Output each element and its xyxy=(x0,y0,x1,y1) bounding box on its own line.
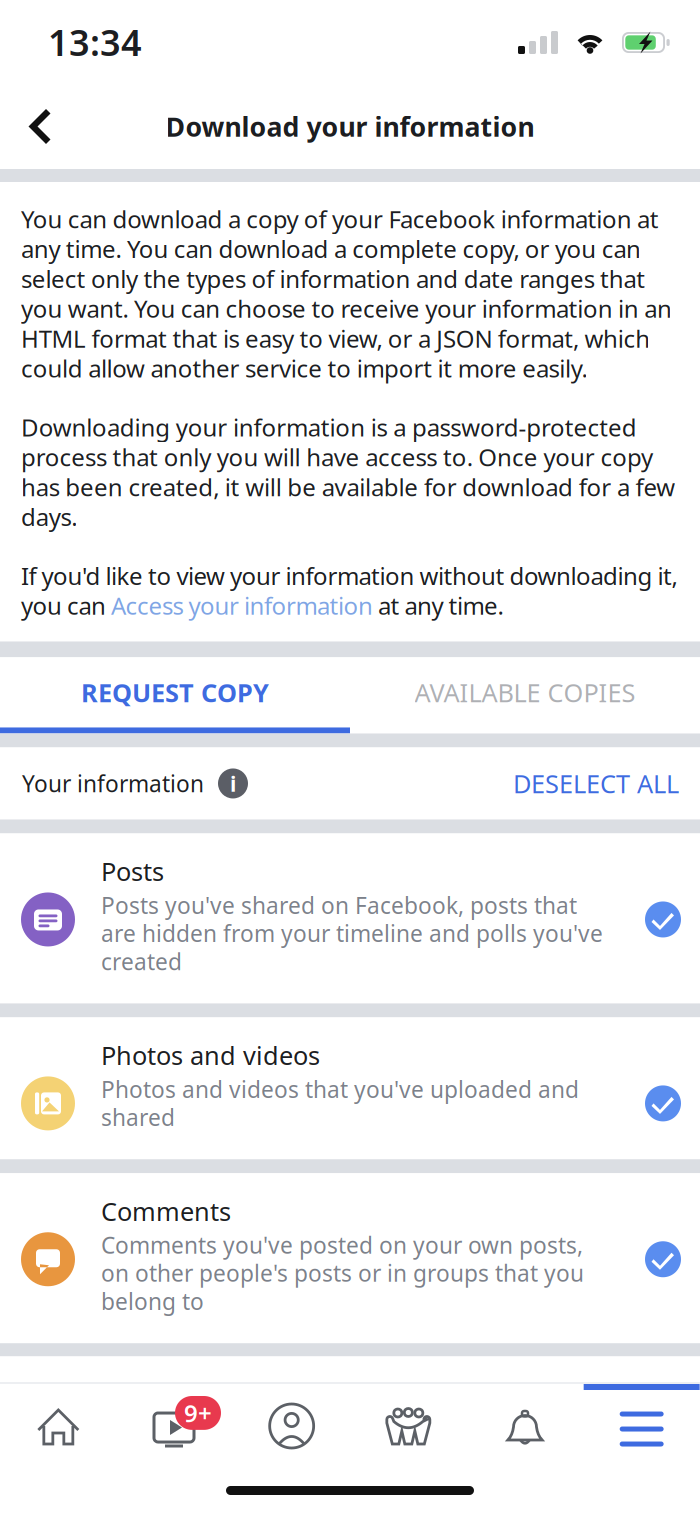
button[interactable]: Comments xyxy=(0,1173,700,1343)
button[interactable]: Watch xyxy=(117,1384,233,1468)
staticText: If you'd like to view your information w… xyxy=(21,560,677,621)
staticText: Posts you've shared on Facebook, posts t… xyxy=(101,890,603,976)
button[interactable]: Posts xyxy=(0,833,700,1003)
button[interactable]: Home xyxy=(0,1384,117,1468)
staticText: DESELECT ALL xyxy=(513,767,679,800)
staticText: Downloading your information is a passwo… xyxy=(21,411,675,533)
button[interactable]: Information xyxy=(218,768,248,798)
staticText: i xyxy=(230,769,236,798)
staticText: Your information xyxy=(22,768,204,798)
button[interactable]: Groups xyxy=(350,1384,467,1468)
staticText: Comments xyxy=(101,1194,231,1228)
staticText: Comments you've posted on your own posts… xyxy=(101,1230,584,1316)
button[interactable]: Back xyxy=(0,84,79,168)
staticText: You can download a copy of your Facebook… xyxy=(21,203,672,384)
staticText: Download your information xyxy=(165,109,534,144)
staticText: Photos and videos xyxy=(101,1038,320,1072)
button[interactable]: If you'd like to view your information w… xyxy=(21,560,679,621)
staticText: 9+ xyxy=(184,1397,212,1429)
staticText: 13:34 xyxy=(48,18,142,66)
button[interactable]: AVAILABLE COPIES xyxy=(350,657,700,727)
staticText: Photos and videos that you've uploaded a… xyxy=(101,1074,579,1132)
button[interactable]: REQUEST COPY xyxy=(0,657,350,727)
button[interactable]: Profile xyxy=(233,1384,350,1468)
staticText: Posts xyxy=(101,854,164,888)
staticText: REQUEST COPY xyxy=(81,676,269,709)
button[interactable]: Notifications xyxy=(467,1384,583,1468)
button[interactable]: Photos and videos xyxy=(0,1017,700,1159)
button[interactable]: DESELECT ALL xyxy=(513,767,679,800)
staticText: AVAILABLE COPIES xyxy=(414,676,635,709)
button[interactable]: Menu xyxy=(583,1384,700,1468)
